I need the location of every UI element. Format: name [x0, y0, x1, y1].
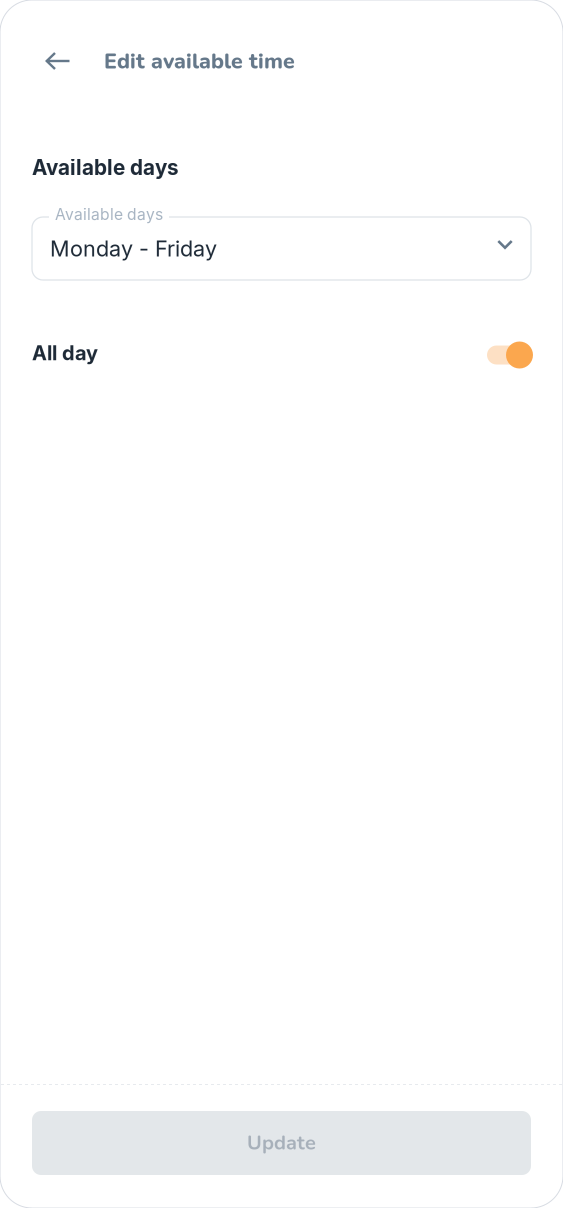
button[interactable]: All day	[487, 341, 533, 369]
staticText: Edit available time	[104, 47, 295, 76]
staticText: Available days	[32, 155, 179, 180]
button[interactable]: Back	[35, 38, 81, 84]
staticText: Update	[247, 1129, 316, 1157]
button[interactable]: Monday - Friday	[32, 217, 531, 280]
staticText: All day	[32, 341, 98, 365]
button[interactable]: Update	[32, 1111, 531, 1175]
staticText: Available days	[55, 205, 163, 224]
staticText: Monday - Friday	[50, 235, 217, 262]
